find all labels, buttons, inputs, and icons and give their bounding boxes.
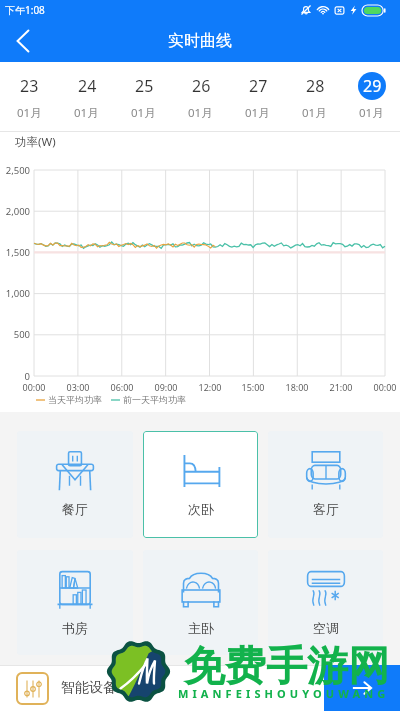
staticText: 15:00 <box>235 381 271 393</box>
staticText: 21:00 <box>323 381 359 393</box>
button[interactable]: Next <box>324 665 400 711</box>
staticText: 01月 <box>359 105 384 121</box>
staticText: 1,000 <box>0 287 30 300</box>
button[interactable]: Back <box>0 20 46 62</box>
staticText: 1,500 <box>0 246 30 259</box>
button[interactable]: 客厅 <box>268 431 383 538</box>
staticText: 01月 <box>245 105 270 121</box>
staticText: 2,500 <box>0 164 30 177</box>
staticText: 次卧 <box>188 501 214 517</box>
button[interactable]: 主卧 <box>143 550 258 655</box>
staticText: 餐厅 <box>62 501 88 517</box>
staticText: 当天平均功率 <box>48 394 102 405</box>
button[interactable]: 28 <box>286 62 343 131</box>
staticText: 06:00 <box>104 381 140 393</box>
staticText: MIANFEISHOUYOUWANG <box>178 686 390 701</box>
staticText: 01月 <box>131 105 156 121</box>
button[interactable]: 24 <box>58 62 115 131</box>
button[interactable]: 25 <box>115 62 172 131</box>
button[interactable]: 27 <box>229 62 286 131</box>
staticText: 2,000 <box>0 205 30 218</box>
staticText: 书房 <box>62 620 88 636</box>
staticText: 29 <box>363 75 382 97</box>
staticText: 智能设备 <box>61 679 117 697</box>
staticText: 24 <box>78 75 97 97</box>
staticText: 前一天平均功率 <box>123 394 186 405</box>
staticText: 00:00 <box>16 381 52 393</box>
staticText: 空调 <box>313 620 339 636</box>
button[interactable]: 空调 <box>268 550 383 655</box>
button[interactable]: 智能设备 <box>16 665 117 711</box>
staticText: 功率(W) <box>15 134 56 150</box>
staticText: 23 <box>20 75 39 97</box>
staticText: 27 <box>249 75 268 97</box>
staticText: 下午1:08 <box>5 3 45 17</box>
staticText: 500 <box>0 328 30 341</box>
button[interactable]: 次卧 <box>143 431 258 538</box>
button[interactable]: 29 <box>343 62 400 131</box>
staticText: 免费手游网 <box>184 641 389 693</box>
staticText: 12:00 <box>192 381 228 393</box>
staticText: 28 <box>306 75 325 97</box>
button[interactable]: 书房 <box>17 550 133 655</box>
staticText: 01月 <box>188 105 213 121</box>
staticText: 03:00 <box>60 381 96 393</box>
staticText: 09:00 <box>148 381 184 393</box>
button[interactable]: 23 <box>0 62 58 131</box>
staticText: 25 <box>135 75 154 97</box>
staticText: 实时曲线 <box>168 31 232 51</box>
button[interactable]: 26 <box>172 62 229 131</box>
staticText: 18:00 <box>279 381 315 393</box>
staticText: 00:00 <box>367 381 400 393</box>
staticText: 01月 <box>74 105 99 121</box>
staticText: 26 <box>192 75 211 97</box>
staticText: 01月 <box>302 105 327 121</box>
staticText: 客厅 <box>313 501 339 517</box>
staticText: 主卧 <box>188 620 214 636</box>
staticText: 01月 <box>17 105 42 121</box>
button[interactable]: 餐厅 <box>17 431 133 538</box>
staticText: 0 <box>0 370 30 383</box>
